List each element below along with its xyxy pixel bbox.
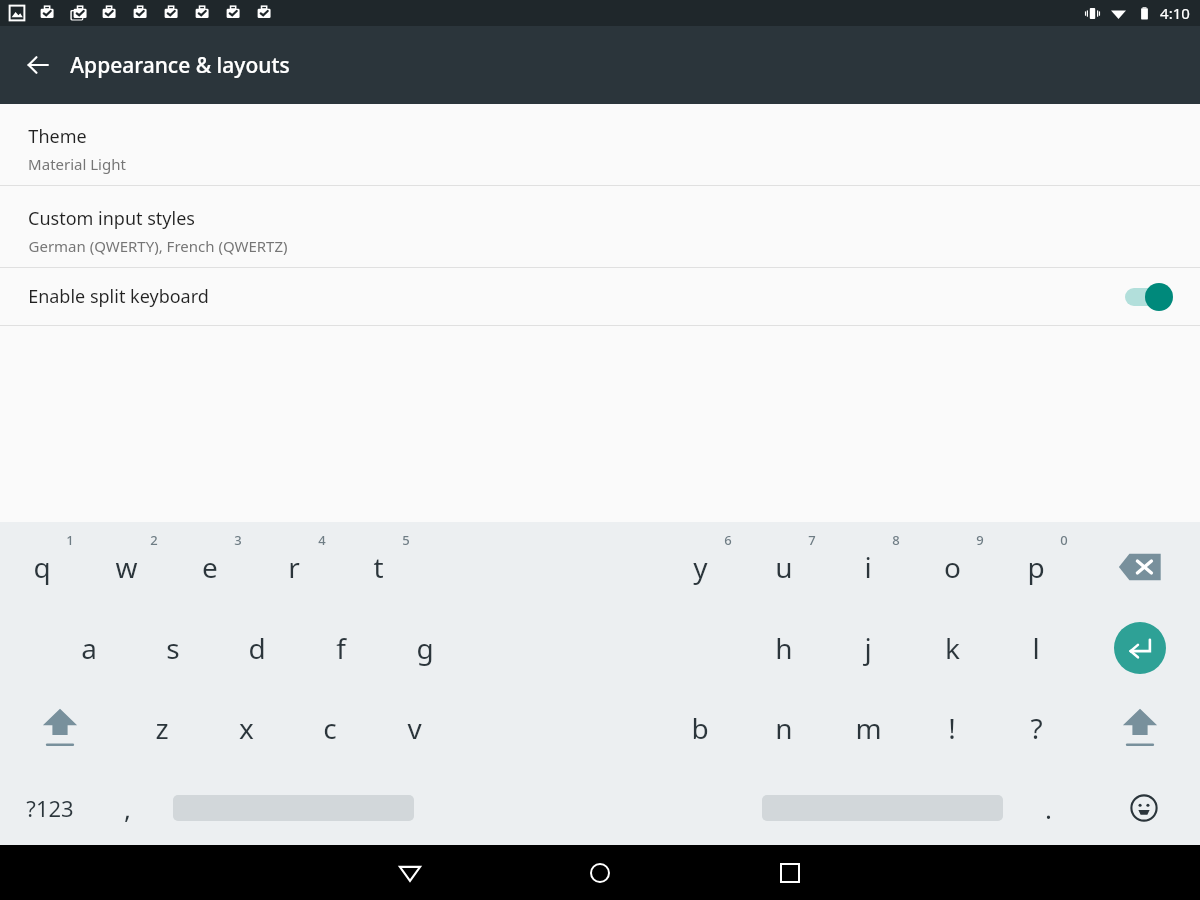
button[interactable]: z xyxy=(120,695,204,761)
staticText: s xyxy=(166,629,180,667)
button[interactable]: f xyxy=(299,615,383,681)
button[interactable]: Recent apps xyxy=(760,845,820,900)
staticText: 0 xyxy=(1060,531,1068,549)
staticText: q xyxy=(33,548,51,586)
staticText: , xyxy=(124,791,131,826)
staticText: 6 xyxy=(724,531,732,549)
button[interactable]: Delete xyxy=(1098,537,1182,597)
staticText: 7 xyxy=(808,531,816,549)
button[interactable]: Custom input styles xyxy=(0,186,1200,267)
staticText: Enable split keyboard xyxy=(28,284,209,309)
staticText: 2 xyxy=(150,531,158,549)
staticText: r xyxy=(288,548,300,586)
staticText: ? xyxy=(1030,709,1043,747)
button[interactable]: r xyxy=(252,534,336,600)
staticText: h xyxy=(775,629,793,667)
staticText: ?123 xyxy=(26,793,74,823)
button[interactable]: j xyxy=(826,615,910,681)
staticText: ! xyxy=(948,709,956,747)
button[interactable]: x xyxy=(204,695,288,761)
staticText: . xyxy=(1045,791,1052,826)
button[interactable]: Enter xyxy=(1100,608,1180,688)
button[interactable]: i xyxy=(826,534,910,600)
button[interactable]: ! xyxy=(910,695,994,761)
staticText: e xyxy=(202,548,218,586)
button[interactable]: h xyxy=(742,615,826,681)
staticText: 1 xyxy=(66,531,74,549)
button[interactable]: y xyxy=(658,534,742,600)
staticText: 5 xyxy=(402,531,410,549)
staticText: 9 xyxy=(976,531,984,549)
staticText: i xyxy=(864,548,872,586)
button[interactable]: v xyxy=(372,695,456,761)
staticText: 3 xyxy=(234,531,242,549)
staticText: a xyxy=(81,629,97,667)
staticText: p xyxy=(1027,548,1045,586)
button[interactable]: o xyxy=(910,534,994,600)
button[interactable]: Shift xyxy=(18,694,102,762)
staticText: Theme xyxy=(28,124,87,149)
button[interactable]: ? xyxy=(994,695,1078,761)
staticText: o xyxy=(944,548,961,586)
staticText: v xyxy=(407,709,422,747)
staticText: g xyxy=(416,629,434,667)
button[interactable]: l xyxy=(994,615,1078,681)
staticText: Material Light xyxy=(28,154,126,174)
button[interactable]: m xyxy=(826,695,910,761)
button[interactable]: p xyxy=(994,534,1078,600)
button[interactable]: Back xyxy=(380,845,440,900)
staticText: u xyxy=(775,548,793,586)
staticText: 4:10 xyxy=(1160,3,1190,23)
staticText: Appearance & layouts xyxy=(70,51,290,80)
button[interactable]: , xyxy=(85,775,169,841)
button[interactable]: d xyxy=(215,615,299,681)
button[interactable]: Shift xyxy=(1098,694,1182,762)
button[interactable]: Enable split keyboard xyxy=(0,268,1200,325)
staticText: j xyxy=(864,629,872,667)
button[interactable]: e xyxy=(168,534,252,600)
staticText: c xyxy=(323,709,337,747)
button[interactable]: s xyxy=(131,615,215,681)
button[interactable]: q xyxy=(0,534,84,600)
staticText: n xyxy=(775,709,793,747)
staticText: w xyxy=(115,548,138,586)
staticText: 8 xyxy=(892,531,900,549)
staticText: t xyxy=(373,548,384,586)
button[interactable]: ?123 xyxy=(0,778,100,838)
staticText: k xyxy=(945,629,960,667)
button[interactable]: Navigate up xyxy=(14,41,62,89)
button[interactable]: g xyxy=(383,615,467,681)
staticText: m xyxy=(855,709,882,747)
button[interactable]: Theme xyxy=(0,104,1200,185)
button[interactable]: Emoji xyxy=(1109,778,1179,838)
button[interactable]: w xyxy=(84,534,168,600)
staticText: f xyxy=(336,629,346,667)
button[interactable]: k xyxy=(910,615,994,681)
staticText: x xyxy=(239,709,254,747)
staticText: l xyxy=(1032,629,1040,667)
staticText: Custom input styles xyxy=(28,206,195,231)
button[interactable]: u xyxy=(742,534,826,600)
button[interactable]: Home xyxy=(570,845,630,900)
button[interactable]: a xyxy=(47,615,131,681)
staticText: b xyxy=(691,709,709,747)
button[interactable]: t xyxy=(336,534,420,600)
staticText: z xyxy=(155,709,169,747)
button[interactable]: c xyxy=(288,695,372,761)
button[interactable]: n xyxy=(742,695,826,761)
staticText: German (QWERTY), French (QWERTZ) xyxy=(28,236,288,256)
staticText: y xyxy=(693,548,708,586)
button[interactable]: b xyxy=(658,695,742,761)
staticText: d xyxy=(248,629,266,667)
button[interactable]: . xyxy=(1006,775,1090,841)
staticText: 4 xyxy=(318,531,326,549)
